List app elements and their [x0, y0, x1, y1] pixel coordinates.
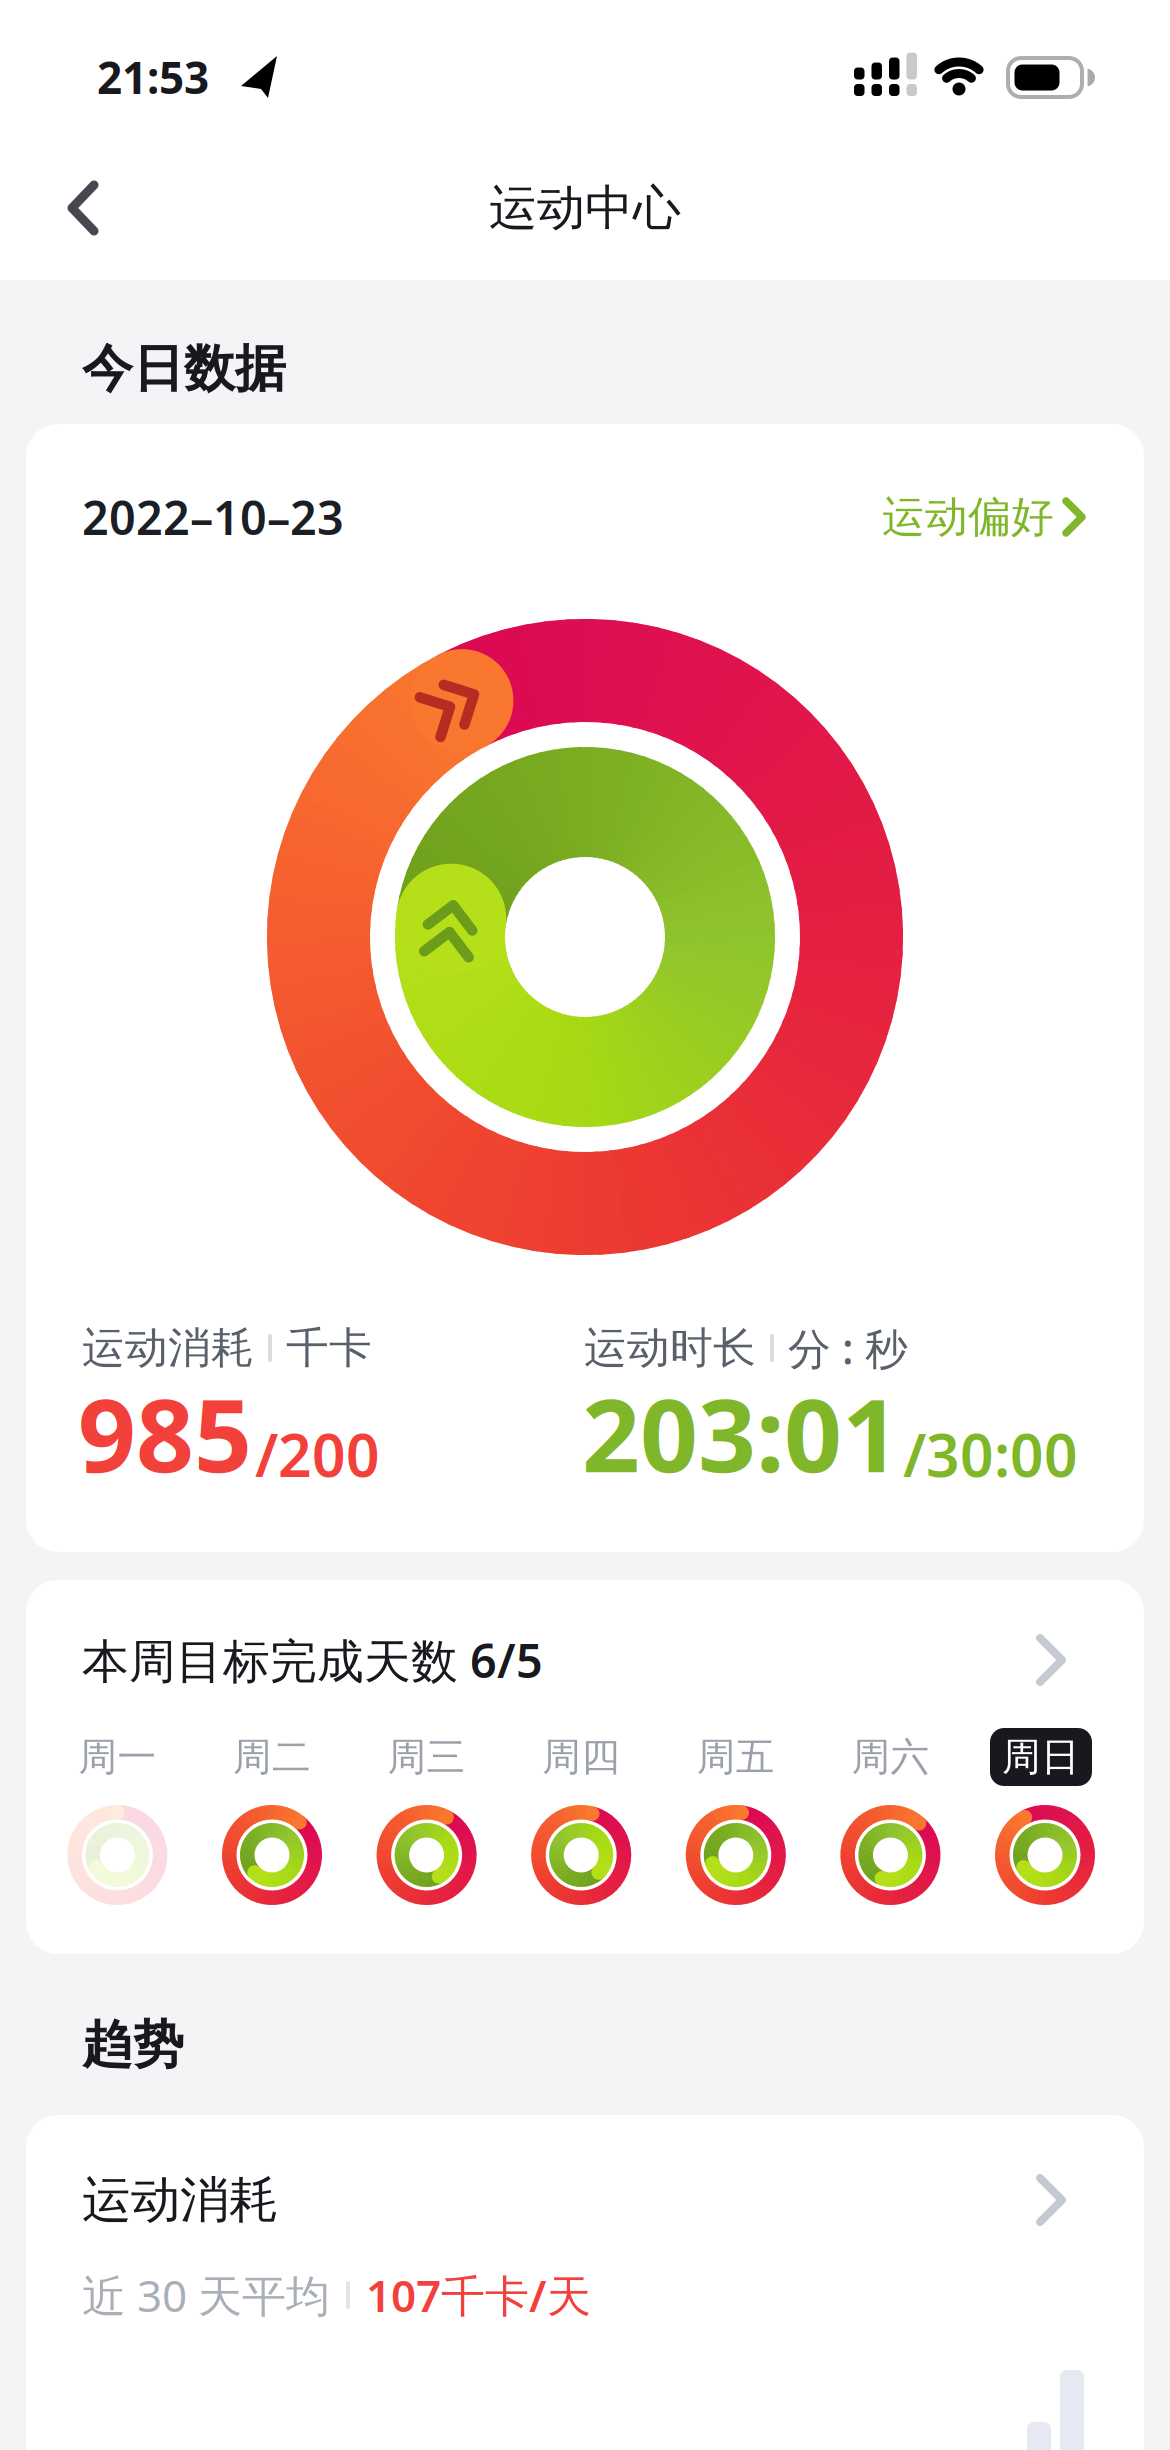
staticText: 周一	[78, 1733, 156, 1781]
staticText: 107千卡/天	[366, 2266, 591, 2324]
button[interactable]	[26, 1580, 1144, 1954]
staticText: 运动中心	[489, 178, 681, 237]
staticText: /30:00	[903, 1415, 1078, 1493]
staticText: 203:01	[582, 1366, 900, 1500]
button[interactable]: 运动偏好	[728, 482, 1088, 552]
staticText: 本周目标完成天数 6/5	[82, 1629, 543, 1691]
staticText: 今日数据	[82, 338, 286, 400]
staticText: 21:53	[97, 48, 209, 106]
button[interactable]	[48, 168, 118, 248]
button[interactable]	[26, 2115, 1144, 2450]
staticText: 运动偏好	[882, 491, 1054, 543]
staticText: 运动消耗	[82, 2170, 278, 2230]
staticText: 周六	[851, 1733, 929, 1781]
staticText: 周四	[542, 1733, 620, 1781]
staticText: 分 : 秒	[788, 1320, 908, 1376]
staticText: 运动时长	[584, 1322, 756, 1374]
staticText: /200	[255, 1415, 380, 1493]
staticText: 趋势	[82, 2014, 184, 2076]
staticText: 运动消耗	[82, 1322, 254, 1374]
staticText: 周三	[388, 1733, 466, 1781]
staticText: 周二	[233, 1733, 311, 1781]
staticText: 周日	[1002, 1733, 1080, 1781]
staticText: 近 30 天平均	[82, 2266, 330, 2324]
staticText: 千卡	[286, 1322, 372, 1374]
staticText: 2022–10–23	[82, 486, 344, 548]
staticText: 周五	[697, 1733, 775, 1781]
staticText: 985	[78, 1366, 252, 1500]
